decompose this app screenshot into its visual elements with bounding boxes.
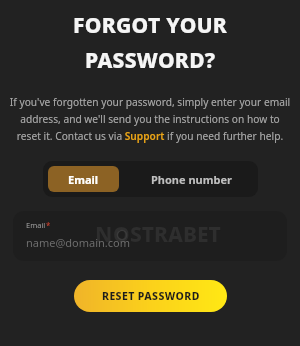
staticText: Email [26, 220, 46, 230]
staticText: Email [68, 172, 99, 187]
staticText: * [46, 220, 51, 231]
staticText: FORGOT YOUR [73, 11, 228, 40]
staticText: Phone number [151, 172, 232, 187]
button[interactable]: RESET PASSWORD [74, 280, 227, 312]
staticText: RESET PASSWORD [102, 289, 200, 303]
staticText: O [113, 220, 130, 249]
staticText: STRABET [130, 220, 221, 249]
staticText: PASSWORD? [85, 46, 216, 75]
staticText: If you've forgotten your password, simpl… [9, 95, 291, 143]
button[interactable]: Email [48, 166, 119, 192]
staticText: N [95, 220, 113, 249]
button[interactable]: Phone number [124, 161, 258, 197]
staticText: name@domain.com [26, 235, 131, 250]
button[interactable]: N [13, 211, 287, 261]
